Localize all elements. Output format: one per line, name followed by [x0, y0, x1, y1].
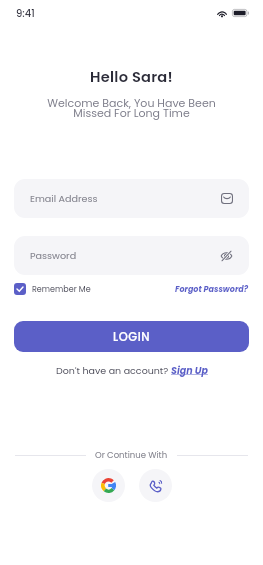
button[interactable]: LOGIN: [14, 321, 249, 352]
staticText: Password: [30, 249, 77, 262]
button[interactable]: Continue with Google: [92, 469, 125, 502]
button[interactable]: Email Address: [14, 179, 249, 218]
button[interactable]: Continue with phone: [139, 469, 172, 502]
staticText: Hello Sara!: [0, 67, 263, 87]
staticText: Forgot Password?: [175, 284, 249, 295]
staticText: Email Address: [30, 192, 98, 205]
button[interactable]: Password: [14, 236, 249, 275]
staticText: Don't have an account?: [56, 364, 171, 377]
button[interactable]: Remember Me: [14, 281, 91, 297]
staticText: Sign Up: [171, 364, 208, 377]
staticText: Or Continue With: [95, 449, 168, 461]
button[interactable]: Sign Up: [171, 364, 208, 377]
staticText: Welcome Back, You Have Been Missed For L…: [0, 95, 263, 121]
staticText: Remember Me: [32, 284, 91, 295]
staticText: 9:41: [16, 6, 35, 20]
staticText: LOGIN: [113, 329, 151, 345]
button[interactable]: Forgot Password?: [175, 282, 249, 297]
